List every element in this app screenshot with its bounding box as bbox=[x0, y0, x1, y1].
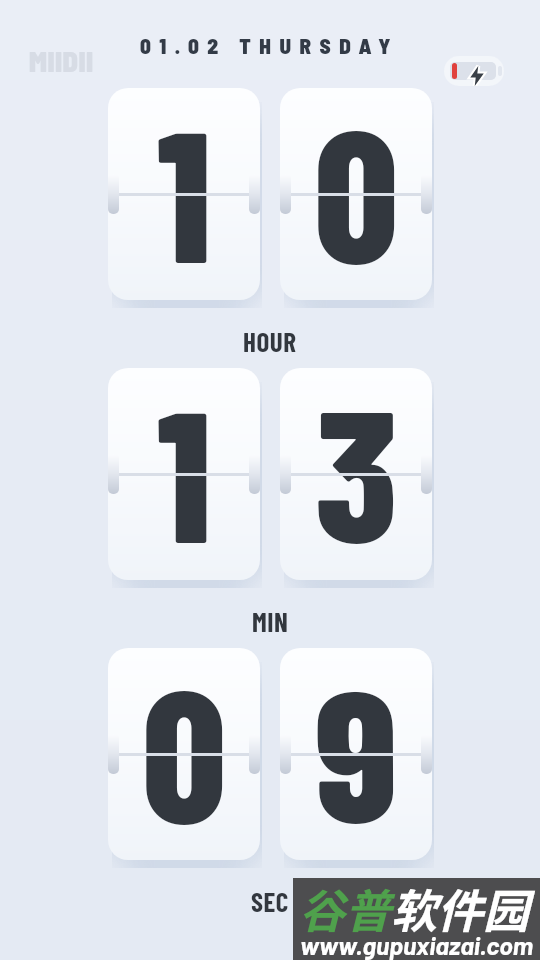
staticText: www.gupuxiazai.com bbox=[300, 930, 533, 960]
button[interactable]: 1 bbox=[108, 368, 260, 580]
staticText: 3 bbox=[315, 368, 398, 570]
staticText: 谷普软件园 bbox=[299, 875, 529, 942]
staticText: 9 bbox=[315, 648, 398, 850]
staticText: 1 bbox=[157, 88, 212, 290]
button[interactable]: 3 bbox=[280, 368, 432, 580]
staticText: 01.02 THURSDAY bbox=[140, 33, 400, 58]
staticText: 1 bbox=[157, 368, 212, 570]
staticText: HOUR bbox=[243, 325, 297, 357]
button[interactable]: 1 bbox=[108, 88, 260, 300]
button[interactable] bbox=[444, 56, 504, 86]
button[interactable]: 9 bbox=[280, 648, 432, 860]
staticText: SEC bbox=[251, 885, 289, 917]
staticText: 0 bbox=[314, 88, 399, 290]
staticText: MIN bbox=[252, 605, 289, 637]
staticText: 0 bbox=[142, 648, 227, 850]
button[interactable]: 0 bbox=[108, 648, 260, 860]
button[interactable]: 0 bbox=[280, 88, 432, 300]
button[interactable]: 谷普软件园 bbox=[293, 878, 540, 960]
staticText: MIIDII bbox=[29, 44, 94, 78]
